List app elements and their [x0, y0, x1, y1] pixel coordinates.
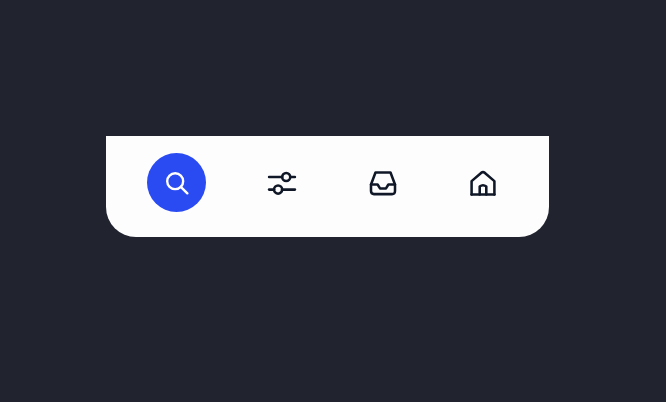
button[interactable]: Home: [454, 154, 512, 212]
button[interactable]: Search: [147, 153, 206, 212]
button[interactable]: Filters: [253, 154, 311, 212]
button[interactable]: Inbox: [354, 154, 412, 212]
